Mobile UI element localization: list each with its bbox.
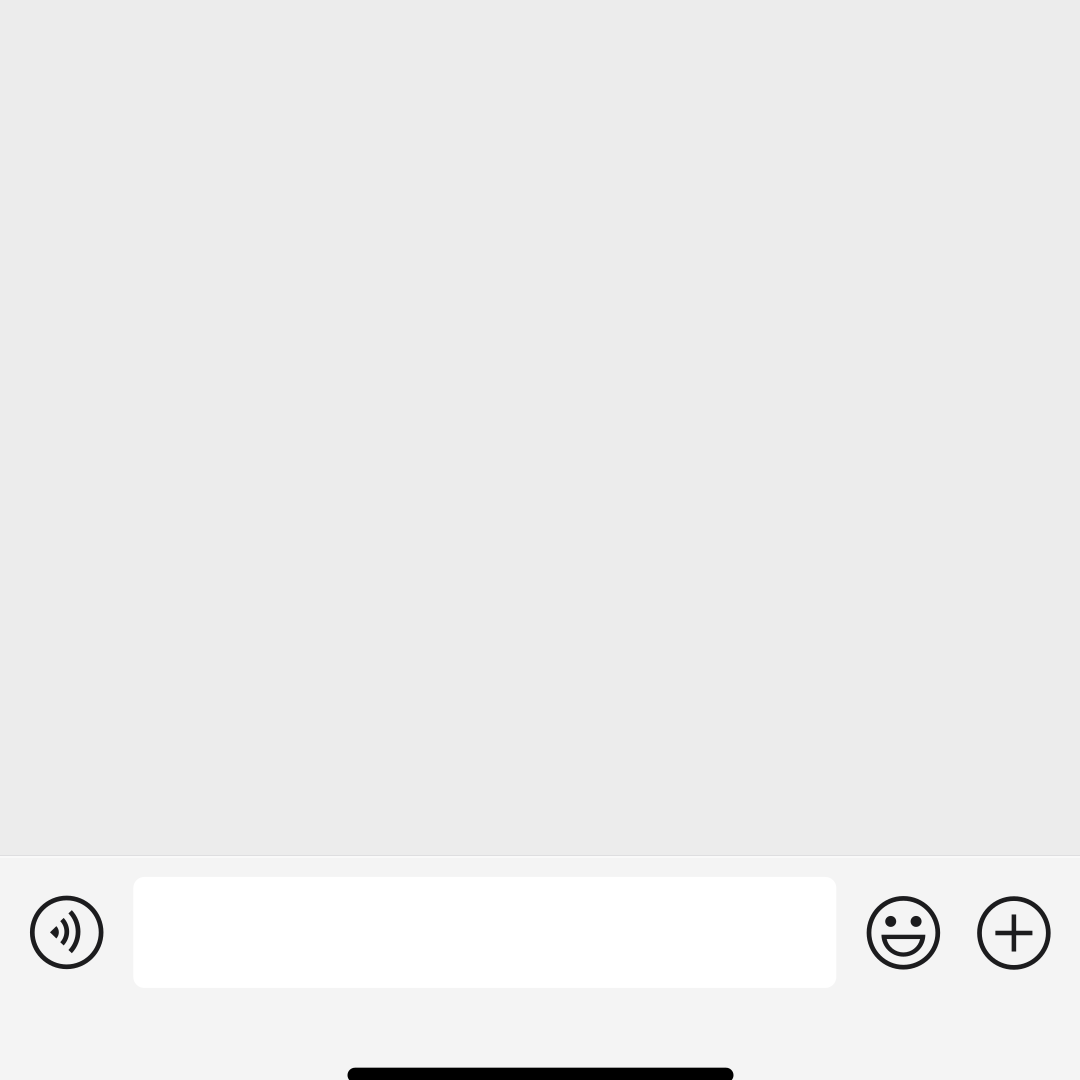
button[interactable]: Stickers [854,883,953,982]
button[interactable]: Record audio message [17,883,116,982]
button[interactable]: More options [964,883,1064,983]
